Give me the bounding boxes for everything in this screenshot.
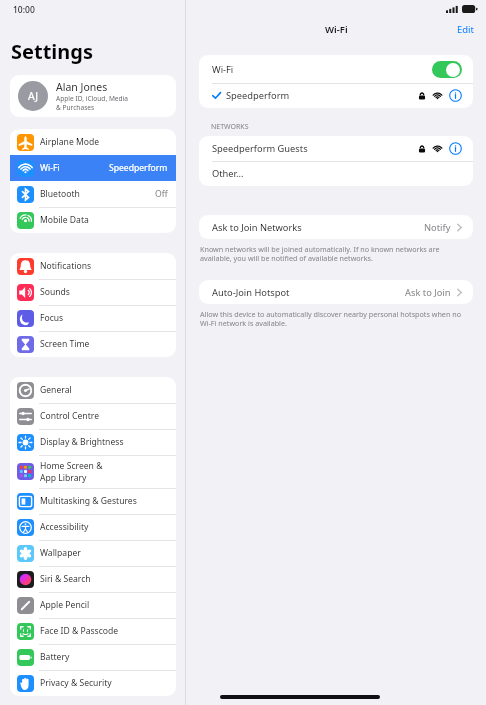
staticText: App Library xyxy=(40,472,87,484)
staticText: Privacy & Security xyxy=(40,677,112,689)
staticText: Mobile Data xyxy=(40,214,89,226)
button[interactable]: General xyxy=(10,377,176,403)
button[interactable]: Display & Brightness xyxy=(10,429,176,455)
button[interactable]: Privacy & Security xyxy=(10,670,176,696)
button[interactable]: Wi-Fi xyxy=(10,155,176,181)
staticText: Home Screen & xyxy=(40,460,103,472)
staticText: Settings xyxy=(11,38,93,65)
button[interactable]: Auto-Join Hotspot xyxy=(199,280,473,304)
button[interactable]: Apple Pencil xyxy=(10,592,176,618)
staticText: Siri & Search xyxy=(40,573,91,585)
staticText: & Purchases xyxy=(56,103,95,112)
button[interactable]: Other... xyxy=(199,161,473,186)
button[interactable]: Ask to Join Networks xyxy=(199,215,473,239)
staticText: Notify xyxy=(424,221,451,234)
staticText: Apple ID, iCloud, Media xyxy=(56,94,129,103)
staticText: Wallpaper xyxy=(40,547,81,559)
button[interactable]: Sounds xyxy=(10,279,176,305)
button[interactable]: Wi-Fi xyxy=(199,55,473,83)
button[interactable]: AJ xyxy=(10,75,176,117)
button[interactable]: Mobile Data xyxy=(10,207,176,233)
button[interactable]: Accessibility xyxy=(10,514,176,540)
staticText: Wi-Fi xyxy=(40,162,60,174)
button[interactable]: Notifications xyxy=(10,253,176,279)
button[interactable] xyxy=(432,61,462,78)
staticText: Other... xyxy=(212,167,462,180)
staticText: Screen Time xyxy=(40,338,90,350)
staticText: Ask to Join Networks xyxy=(212,221,424,234)
staticText: Speedperform Guests xyxy=(212,142,418,155)
staticText: Known networks will be joined automatica… xyxy=(200,244,472,264)
staticText: Bluetooth xyxy=(40,188,80,200)
staticText: Edit xyxy=(457,23,475,36)
staticText: Airplane Mode xyxy=(40,136,100,148)
staticText: Auto-Join Hotspot xyxy=(212,286,405,299)
staticText: Wi-Fi xyxy=(325,23,348,36)
button[interactable]: Face ID & Passcode xyxy=(10,618,176,644)
staticText: Speedperform xyxy=(226,89,418,102)
button[interactable]: Control Centre xyxy=(10,403,176,429)
button[interactable]: Multitasking & Gestures xyxy=(10,488,176,514)
button[interactable]: Speedperform Guests xyxy=(199,136,473,161)
button[interactable]: Focus xyxy=(10,305,176,331)
button[interactable]: Wallpaper xyxy=(10,540,176,566)
button[interactable]: Speedperform xyxy=(199,83,473,108)
staticText: AJ xyxy=(28,89,39,103)
staticText: Multitasking & Gestures xyxy=(40,495,137,507)
staticText: Speedperform xyxy=(109,162,168,174)
button[interactable]: Battery xyxy=(10,644,176,670)
staticText: Accessibility xyxy=(40,521,89,533)
staticText: 10:00 xyxy=(13,4,35,16)
staticText: Focus xyxy=(40,312,64,324)
button[interactable]: Siri & Search xyxy=(10,566,176,592)
button[interactable]: Home Screen & xyxy=(10,455,176,488)
staticText: Ask to Join xyxy=(405,286,451,299)
staticText: Sounds xyxy=(40,286,70,298)
staticText: Apple Pencil xyxy=(40,599,90,611)
button[interactable]: More info xyxy=(449,89,462,102)
staticText: Battery xyxy=(40,651,70,663)
staticText: Alan Jones xyxy=(56,80,108,94)
staticText: Display & Brightness xyxy=(40,436,124,448)
staticText: Wi-Fi xyxy=(212,63,432,76)
staticText: Off xyxy=(155,188,168,200)
staticText: Control Centre xyxy=(40,410,99,422)
staticText: Notifications xyxy=(40,260,92,272)
button[interactable]: Airplane Mode xyxy=(10,129,176,155)
staticText: NETWORKS xyxy=(211,122,249,132)
staticText: General xyxy=(40,384,72,396)
button[interactable]: Screen Time xyxy=(10,331,176,357)
button[interactable]: More info xyxy=(449,142,462,155)
staticText: Face ID & Passcode xyxy=(40,625,119,637)
staticText: Allow this device to automatically disco… xyxy=(200,309,472,329)
button[interactable]: Edit xyxy=(457,23,475,36)
button[interactable]: Bluetooth xyxy=(10,181,176,207)
